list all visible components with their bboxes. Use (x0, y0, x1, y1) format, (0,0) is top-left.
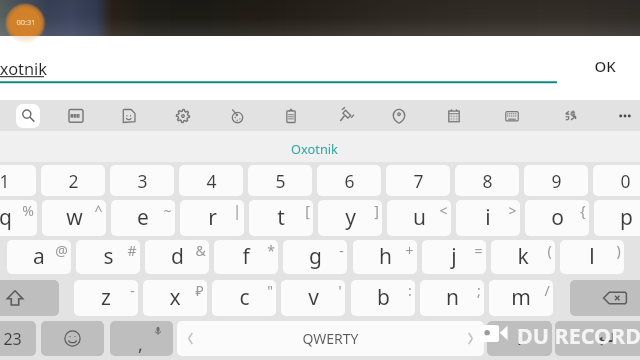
staticText: QWERTY (302, 329, 359, 348)
button[interactable]: Clipboard (278, 103, 304, 129)
staticText: 0 (620, 169, 631, 193)
button[interactable]: z (74, 280, 138, 316)
button[interactable]: a (7, 240, 71, 274)
staticText: 6 (344, 169, 355, 193)
staticText: q (0, 203, 12, 232)
staticText: c (239, 283, 250, 312)
staticText: u (413, 203, 426, 232)
staticText: * (267, 241, 275, 260)
staticText: & (195, 241, 206, 260)
button[interactable]: r (180, 200, 244, 236)
staticText: w (66, 203, 83, 232)
button[interactable]: . (487, 321, 552, 356)
button[interactable]: 1 (0, 165, 36, 196)
button[interactable]: Keyboard layout (499, 103, 525, 129)
button[interactable]: Calendar (441, 103, 467, 129)
button[interactable]: OK (580, 49, 629, 83)
staticText: l (589, 242, 595, 271)
staticText: ₽ (195, 281, 204, 300)
staticText: e (137, 203, 149, 232)
staticText: - (130, 281, 135, 300)
button[interactable]: , (110, 321, 173, 356)
button[interactable]: 4 (179, 165, 243, 196)
other: Recording timer (0, 0, 640, 60)
button[interactable]: b (351, 280, 415, 316)
button[interactable] (41, 321, 104, 356)
staticText: Oxotnik (0, 57, 48, 79)
button[interactable]: Location (386, 103, 412, 129)
button[interactable]: 8 (455, 165, 519, 196)
button[interactable]: 7 (386, 165, 450, 196)
button[interactable]: l (560, 240, 624, 274)
button[interactable]: o (525, 200, 589, 236)
staticText: , (138, 332, 143, 356)
button[interactable]: p (594, 200, 640, 236)
button[interactable]: 6 (317, 165, 381, 196)
button[interactable]: GIF (63, 103, 89, 129)
button[interactable]: Settings (170, 103, 196, 129)
staticText: Oxotnik (291, 140, 338, 157)
staticText: s (103, 242, 114, 271)
button[interactable]: Pin (332, 103, 358, 129)
button[interactable] (555, 321, 640, 356)
staticText: t (277, 203, 285, 232)
button[interactable]: Themes (224, 103, 250, 129)
staticText: 9 (551, 169, 562, 193)
staticText: < (439, 201, 448, 220)
button[interactable]: s (76, 240, 140, 274)
staticText: ; (477, 281, 481, 300)
button[interactable]: Language (558, 103, 584, 129)
button[interactable]: h (353, 240, 417, 274)
button[interactable]: 3 (110, 165, 174, 196)
staticText: [ (305, 201, 310, 220)
button[interactable] (570, 280, 640, 316)
button[interactable]: w (42, 200, 106, 236)
button[interactable]: Oxotnik (284, 133, 344, 164)
staticText: + (405, 241, 414, 260)
button[interactable]: m (489, 280, 553, 316)
button[interactable]: Search (16, 104, 40, 128)
button[interactable]: n (420, 280, 484, 316)
staticText: > (508, 201, 517, 220)
button[interactable]: d (145, 240, 209, 274)
button[interactable]: 5 (248, 165, 312, 196)
staticText: { (580, 201, 586, 220)
staticText: p (620, 203, 633, 232)
button[interactable]: y (318, 200, 382, 236)
button[interactable]: k (491, 240, 555, 274)
button[interactable]: x (143, 280, 207, 316)
staticText: ~ (163, 201, 172, 220)
staticText: 8 (482, 169, 493, 193)
button[interactable]: 9 (524, 165, 588, 196)
button[interactable]: e (111, 200, 175, 236)
button[interactable]: More options (612, 103, 638, 129)
button[interactable]: f (214, 240, 278, 274)
button[interactable]: u (387, 200, 451, 236)
button[interactable]: g (283, 240, 347, 274)
staticText: h (379, 242, 392, 271)
staticText: d (171, 242, 184, 271)
staticText: a (33, 242, 45, 271)
staticText: b (377, 283, 390, 312)
button[interactable]: ?123 (0, 321, 36, 356)
button[interactable]: c (212, 280, 276, 316)
staticText: DU RECORDER (517, 321, 640, 350)
button[interactable]: q (0, 200, 37, 236)
staticText: 1 (0, 169, 10, 193)
staticText: r (208, 203, 217, 232)
staticText: j (451, 242, 457, 271)
button[interactable]: v (281, 280, 345, 316)
staticText: OK (594, 56, 616, 76)
button[interactable]: 0 (593, 165, 640, 196)
button[interactable]: j (422, 240, 486, 274)
staticText: v (308, 283, 319, 312)
button[interactable]: i (456, 200, 520, 236)
button[interactable]: QWERTY (177, 321, 484, 356)
button[interactable]: 2 (41, 165, 105, 196)
staticText: @ (55, 241, 68, 260)
button[interactable] (0, 280, 59, 316)
button[interactable]: t (249, 200, 313, 236)
button[interactable]: Stickers (116, 103, 142, 129)
staticText: x (169, 283, 181, 312)
staticText: i (485, 203, 491, 232)
